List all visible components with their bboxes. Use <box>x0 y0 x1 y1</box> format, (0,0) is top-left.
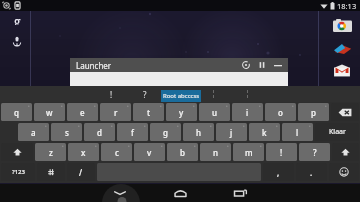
staticText: g <box>163 127 168 138</box>
button[interactable]: Hide keyboard <box>100 184 140 202</box>
staticText: l <box>296 127 299 138</box>
button[interactable]: o <box>265 103 296 121</box>
button[interactable]: Pause <box>256 59 268 71</box>
button[interactable] <box>1 143 33 161</box>
button[interactable]: History <box>240 59 252 71</box>
button[interactable]: Root abcccss <box>161 90 201 102</box>
staticText: i <box>246 107 249 118</box>
button[interactable]: x <box>68 143 99 161</box>
staticText: e <box>80 107 85 118</box>
button[interactable]: b <box>167 143 198 161</box>
button[interactable]: u <box>199 103 230 121</box>
button[interactable]: Gmail <box>333 63 351 77</box>
button[interactable]: l <box>282 123 313 141</box>
button[interactable]: w <box>34 103 65 121</box>
staticText: s <box>65 127 69 138</box>
staticText: w <box>46 107 53 118</box>
staticText: o <box>278 107 283 118</box>
button[interactable]: y <box>166 103 197 121</box>
button[interactable]: i <box>232 103 263 121</box>
staticText: j <box>230 127 233 138</box>
staticText: m <box>245 147 253 158</box>
button[interactable]: Home <box>160 184 200 202</box>
button[interactable]: z <box>35 143 66 161</box>
button[interactable]: Recents <box>220 184 260 202</box>
staticText: b <box>180 147 185 158</box>
button[interactable] <box>37 163 65 181</box>
staticText: 18:13 <box>337 1 357 11</box>
staticText: u <box>212 107 218 118</box>
staticText: y <box>179 107 184 118</box>
button[interactable]: q <box>1 103 32 121</box>
button[interactable]: f <box>117 123 148 141</box>
staticText: Klaar <box>329 127 346 137</box>
button[interactable]: Drive <box>332 41 352 56</box>
staticText: Launcher <box>76 60 112 71</box>
button[interactable]: s <box>51 123 82 141</box>
button[interactable]: v <box>134 143 165 161</box>
staticText: ? <box>313 147 317 158</box>
button[interactable]: a <box>18 123 49 141</box>
button[interactable]: j <box>216 123 247 141</box>
button[interactable]: ! <box>95 86 127 102</box>
staticText: d <box>97 127 102 138</box>
staticText: ? <box>143 89 147 100</box>
staticText: k <box>262 127 267 138</box>
staticText: z <box>49 147 53 158</box>
button[interactable]: n <box>200 143 231 161</box>
button[interactable]: . <box>296 163 327 181</box>
staticText: f <box>131 127 134 138</box>
staticText: ! <box>280 147 283 158</box>
button[interactable]: ? <box>299 143 330 161</box>
button[interactable]: h <box>183 123 214 141</box>
button[interactable]: Minimize <box>272 59 284 71</box>
staticText: Root abcccss <box>163 92 200 100</box>
staticText: n <box>213 147 219 158</box>
staticText: , <box>277 167 280 178</box>
button[interactable] <box>332 143 359 161</box>
button[interactable]: t <box>133 103 164 121</box>
button[interactable] <box>331 103 359 121</box>
staticText: p <box>311 107 316 118</box>
staticText: a <box>31 127 36 138</box>
button[interactable]: m <box>233 143 264 161</box>
button[interactable] <box>329 163 359 181</box>
button[interactable]: d <box>84 123 115 141</box>
staticText: v <box>147 147 152 158</box>
button[interactable]: e <box>67 103 98 121</box>
button[interactable]: Google search <box>11 13 23 25</box>
button[interactable]: p <box>298 103 329 121</box>
button[interactable]: , <box>263 163 294 181</box>
button[interactable]: / <box>67 163 95 181</box>
staticText: . <box>310 167 313 178</box>
staticText: g <box>14 13 21 25</box>
staticText: ! <box>110 89 113 100</box>
staticText: q <box>14 107 19 118</box>
button[interactable]: Photos <box>333 19 352 32</box>
staticText: r <box>114 107 118 118</box>
staticText: t <box>147 107 151 118</box>
button[interactable]: g <box>150 123 181 141</box>
staticText: / <box>79 167 83 178</box>
button[interactable]: Voice search <box>11 35 23 47</box>
button[interactable]: Klaar <box>315 123 359 141</box>
button[interactable]: r <box>100 103 131 121</box>
button[interactable]: ? <box>129 86 161 102</box>
staticText: x <box>81 147 86 158</box>
button[interactable]: c <box>101 143 132 161</box>
staticText: ?123 <box>12 168 25 176</box>
staticText: h <box>196 127 202 138</box>
staticText: c <box>115 147 119 158</box>
button[interactable]: ?123 <box>1 163 35 181</box>
button[interactable]: k <box>249 123 280 141</box>
button[interactable]: ! <box>266 143 297 161</box>
